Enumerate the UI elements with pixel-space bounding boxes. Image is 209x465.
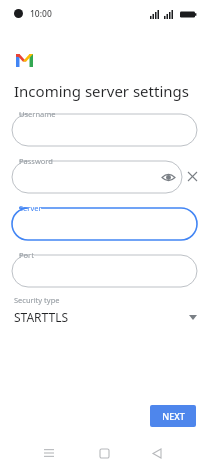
button[interactable]: Back <box>150 446 164 460</box>
button[interactable]: NEXT <box>150 405 196 427</box>
button[interactable]: Clear password <box>184 168 200 184</box>
staticText: Server <box>19 203 42 213</box>
staticText: NEXT <box>162 410 185 422</box>
button[interactable]: Username <box>12 114 197 146</box>
staticText: Port <box>19 250 34 260</box>
staticText: Password <box>19 156 53 166</box>
button[interactable]: Port <box>12 255 197 287</box>
button[interactable]: Server <box>12 208 197 240</box>
button[interactable]: Show password <box>160 169 176 185</box>
button[interactable]: Home <box>97 446 111 460</box>
button[interactable]: Security type <box>12 295 197 331</box>
button[interactable]: Password <box>12 161 182 193</box>
staticText: 10:00 <box>30 8 52 20</box>
staticText: Incoming server settings <box>14 81 189 101</box>
staticText: STARTTLS <box>14 309 69 325</box>
button[interactable]: Recent apps <box>42 446 56 460</box>
staticText: Username <box>19 109 56 119</box>
staticText: Security type <box>14 295 60 305</box>
